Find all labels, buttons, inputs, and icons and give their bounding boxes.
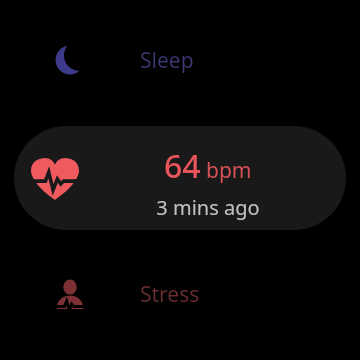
- staticText: bpm: [206, 156, 252, 185]
- staticText: 64: [164, 144, 201, 188]
- staticText: Sleep: [140, 46, 194, 75]
- button[interactable]: Stress: [0, 268, 360, 320]
- other: Stress: [56, 279, 84, 309]
- staticText: Stress: [140, 280, 200, 309]
- button[interactable]: 64: [14, 126, 346, 230]
- staticText: 3 mins ago: [156, 194, 260, 221]
- other: Sleep: [55, 45, 85, 75]
- button[interactable]: Sleep: [0, 34, 360, 86]
